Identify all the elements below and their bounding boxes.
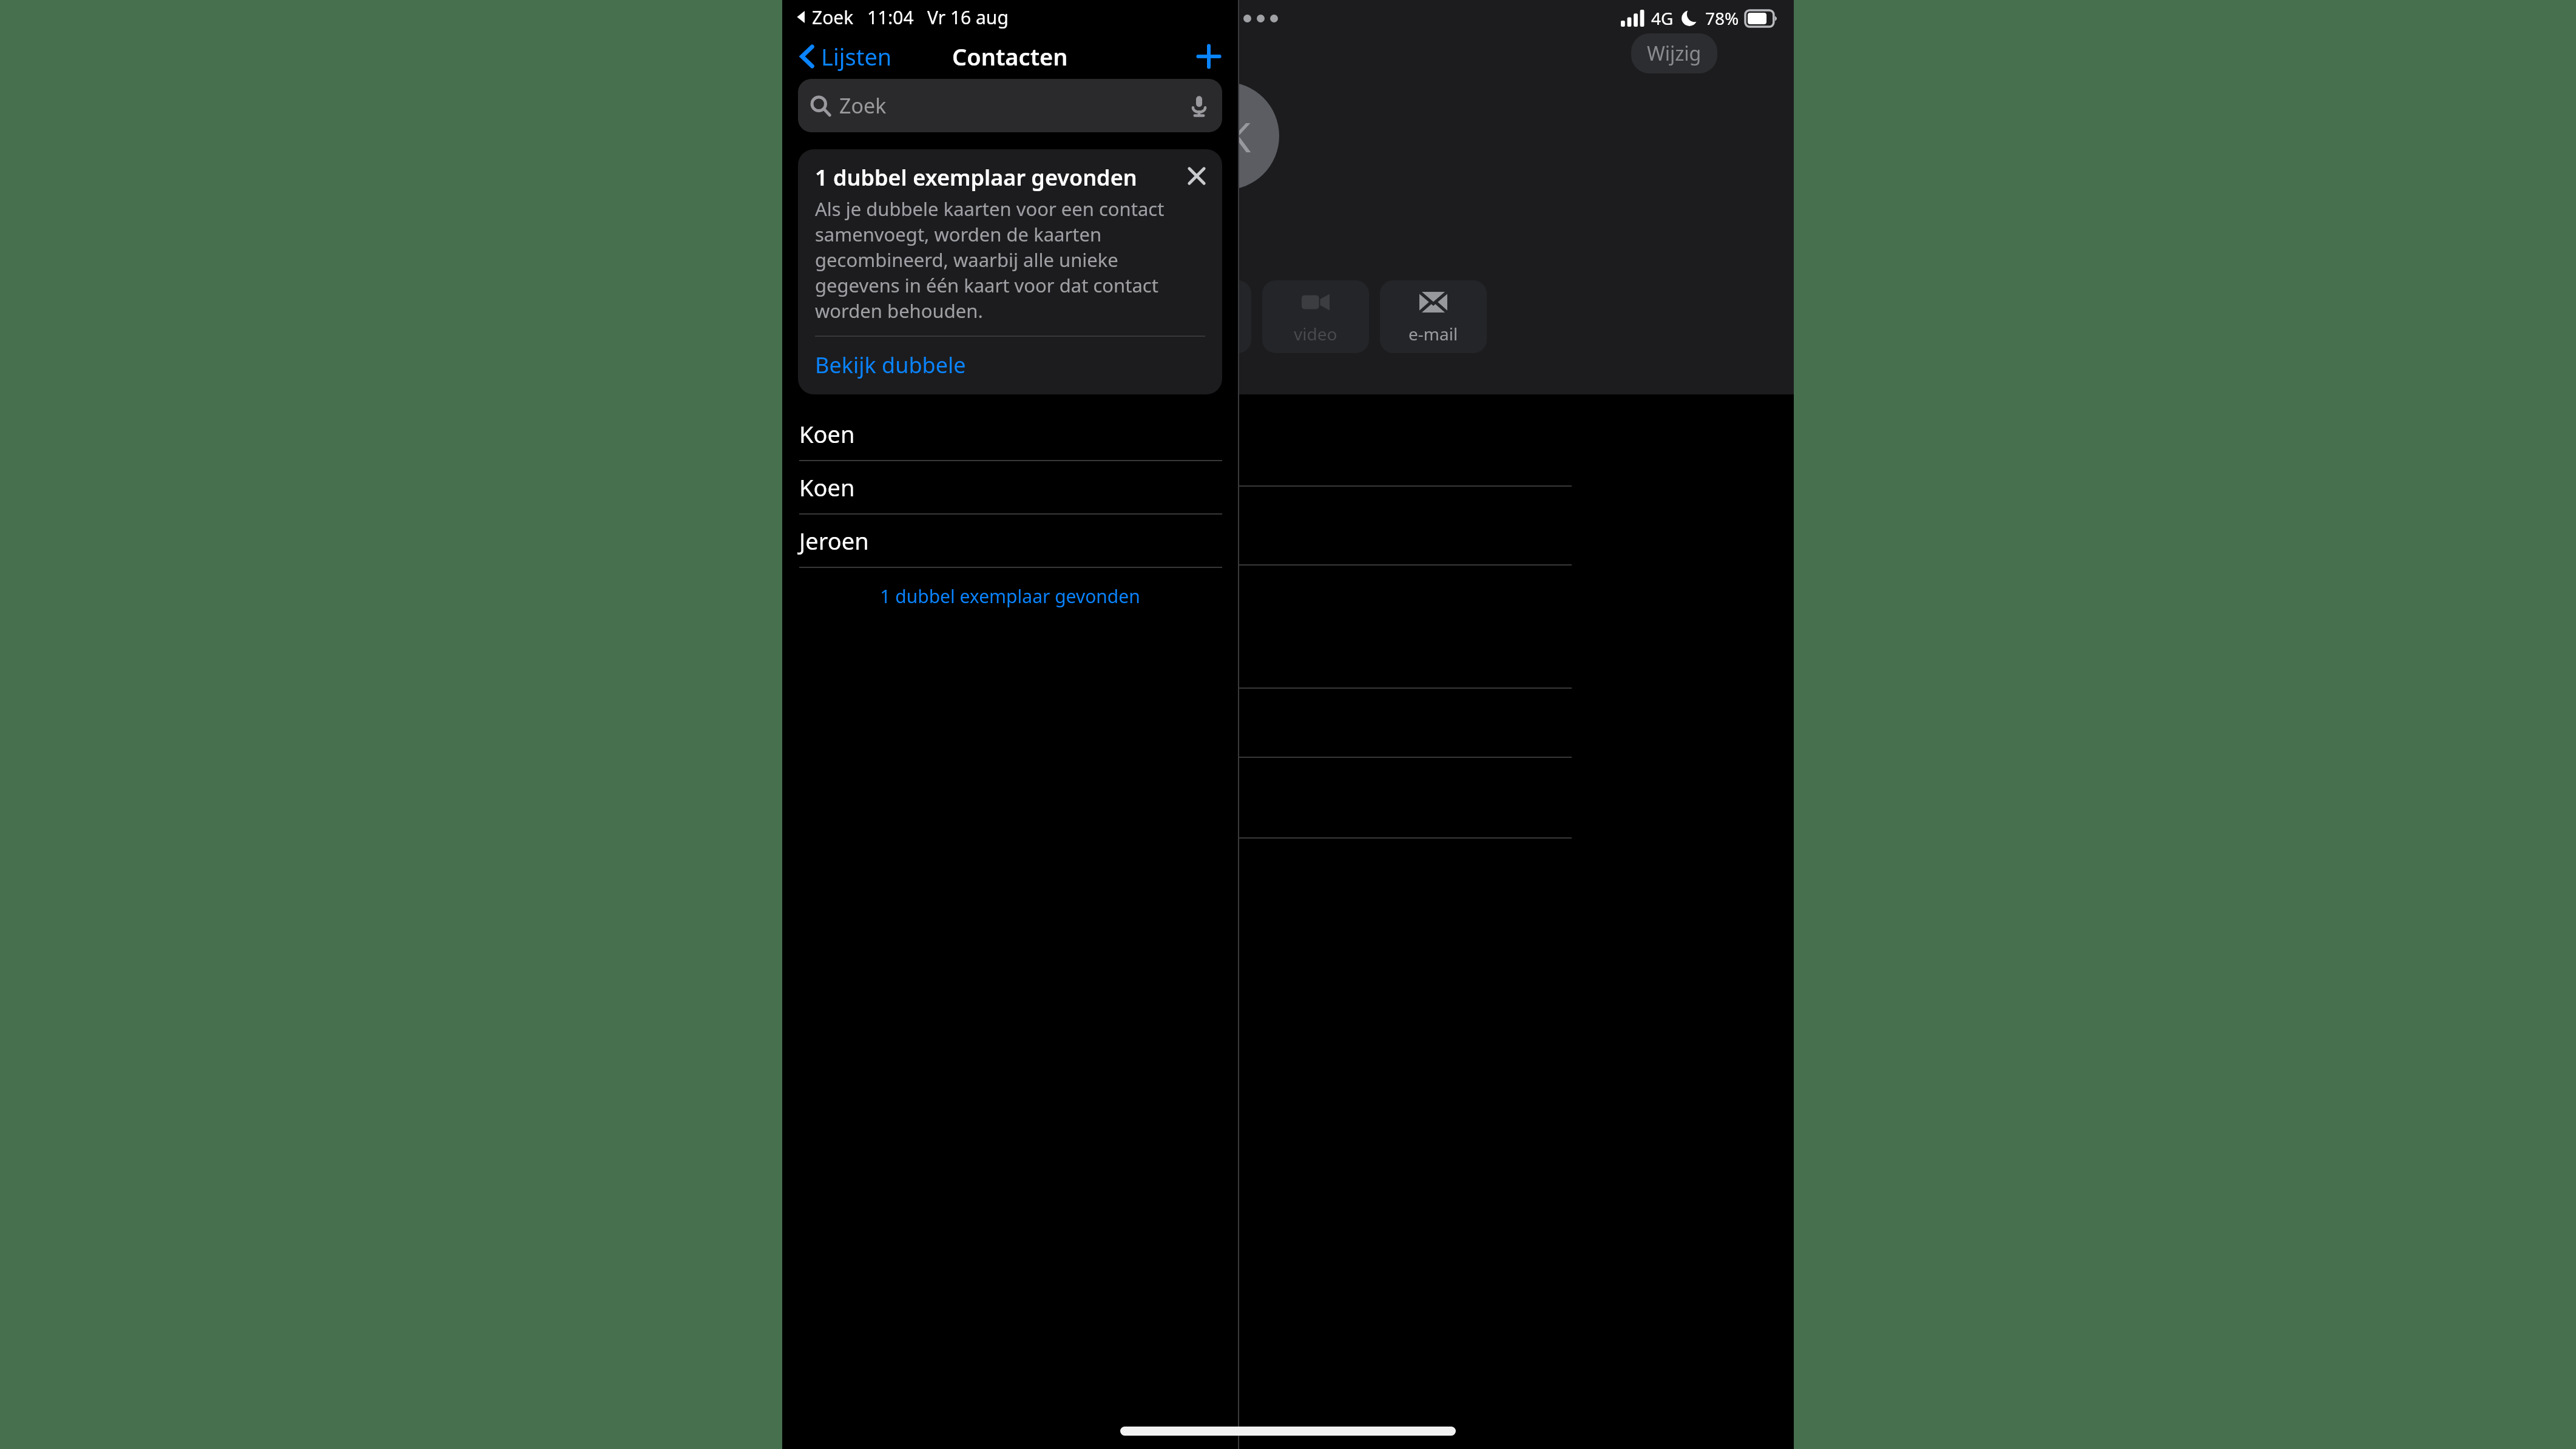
staticText: Koen [799,418,855,450]
staticText: Bekijk dubbele [815,350,966,380]
staticText: Vr 16 aug [927,5,1009,30]
button[interactable]: Zoek [798,79,1222,132]
button[interactable]: video [1262,280,1369,353]
button[interactable]: Wijzig [1631,33,1717,73]
staticText: KK [1200,108,1251,164]
button[interactable]: Sluit [1183,163,1210,189]
staticText: 78% [1705,7,1739,30]
staticText: Wijzig [1647,40,1702,67]
staticText: e-mail [1408,322,1458,345]
button[interactable]: Bekijk dubbele [798,337,1222,394]
staticText: Contacten [952,41,1068,72]
button[interactable]: Bericht [1180,280,1251,353]
staticText: 4G [1651,7,1674,30]
staticText: 1 dubbel exemplaar gevonden [880,584,1140,609]
staticText: 1 dubbel exemplaar gevonden [815,163,1183,192]
button[interactable]: e-mail [1380,280,1487,353]
button[interactable]: Lijsten [782,36,901,77]
staticText: Jeroen [799,525,869,556]
button[interactable]: Koen [782,461,1238,515]
staticText: Koen [799,471,855,503]
staticText: 11:04 [867,5,914,30]
staticText: Zoek [812,5,854,30]
button[interactable]: Dicteren [1188,95,1210,117]
button[interactable]: Jeroen [782,515,1238,568]
staticText: Lijsten [821,41,892,72]
button[interactable]: Koen [782,408,1238,461]
button[interactable]: 1 dubbel exemplaar gevonden [782,584,1238,609]
staticText: Als je dubbele kaarten voor een contact … [815,196,1205,323]
staticText: video [1294,322,1337,345]
staticText: Zoek [839,92,887,120]
button[interactable]: Nieuw contact toevoegen [1180,37,1238,76]
